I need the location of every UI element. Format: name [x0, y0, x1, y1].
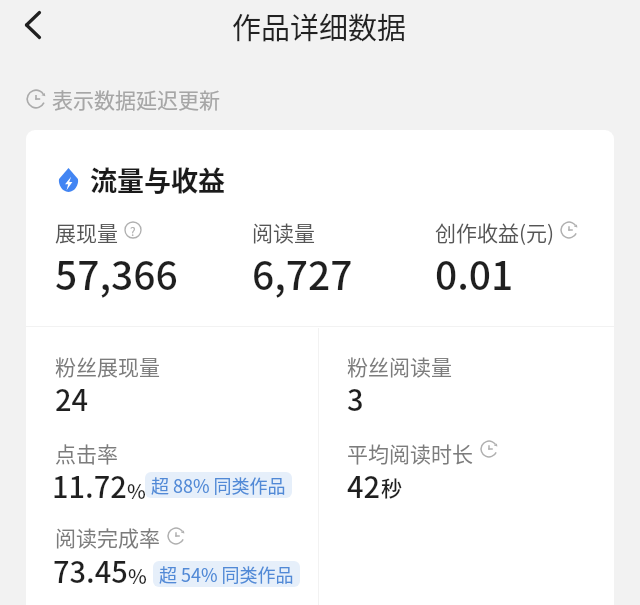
staticText: 0.01 [435, 245, 514, 301]
button[interactable]: 平均阅读时长 [332, 431, 599, 503]
staticText: 阅读完成率 [55, 522, 160, 552]
staticText: 作品详细数据 [232, 5, 407, 47]
staticText: 平均阅读时长 [347, 438, 473, 468]
button[interactable]: 超 88% 同类作品 [145, 472, 292, 498]
staticText: 57,366 [55, 245, 178, 301]
button[interactable]: 点击率 [40, 431, 303, 503]
button[interactable]: 粉丝展现量 [40, 344, 303, 416]
staticText: 创作收益(元) [435, 217, 555, 247]
staticText: % [127, 476, 146, 505]
staticText: 秒 [381, 472, 402, 502]
staticText: 超 88% 同类作品 [151, 472, 286, 498]
staticText: 粉丝展现量 [55, 351, 160, 381]
staticText: 24 [55, 377, 89, 419]
staticText: 展现量 [55, 217, 118, 247]
button[interactable]: 阅读完成率 [40, 515, 303, 587]
button[interactable]: 展现量 [55, 210, 235, 295]
staticText: 超 54% 同类作品 [159, 561, 294, 587]
staticText: 表示数据延迟更新 [52, 84, 220, 114]
staticText: 42 [347, 464, 381, 506]
staticText: 流量与收益 [90, 160, 225, 199]
staticText: 73.45 [53, 549, 128, 591]
staticText: ? [130, 222, 136, 239]
button[interactable]: 阅读量 [252, 210, 422, 295]
button[interactable]: 超 54% 同类作品 [153, 561, 300, 587]
staticText: 6,727 [252, 245, 353, 301]
staticText: 粉丝阅读量 [347, 351, 452, 381]
button[interactable]: 粉丝阅读量 [332, 344, 599, 416]
staticText: 点击率 [55, 438, 118, 468]
staticText: 阅读量 [252, 217, 315, 247]
staticText: % [128, 561, 147, 590]
staticText: 11.72 [52, 464, 127, 506]
button[interactable]: Back [7, 0, 56, 49]
button[interactable]: 创作收益(元) [435, 210, 595, 295]
staticText: 3 [347, 377, 364, 419]
